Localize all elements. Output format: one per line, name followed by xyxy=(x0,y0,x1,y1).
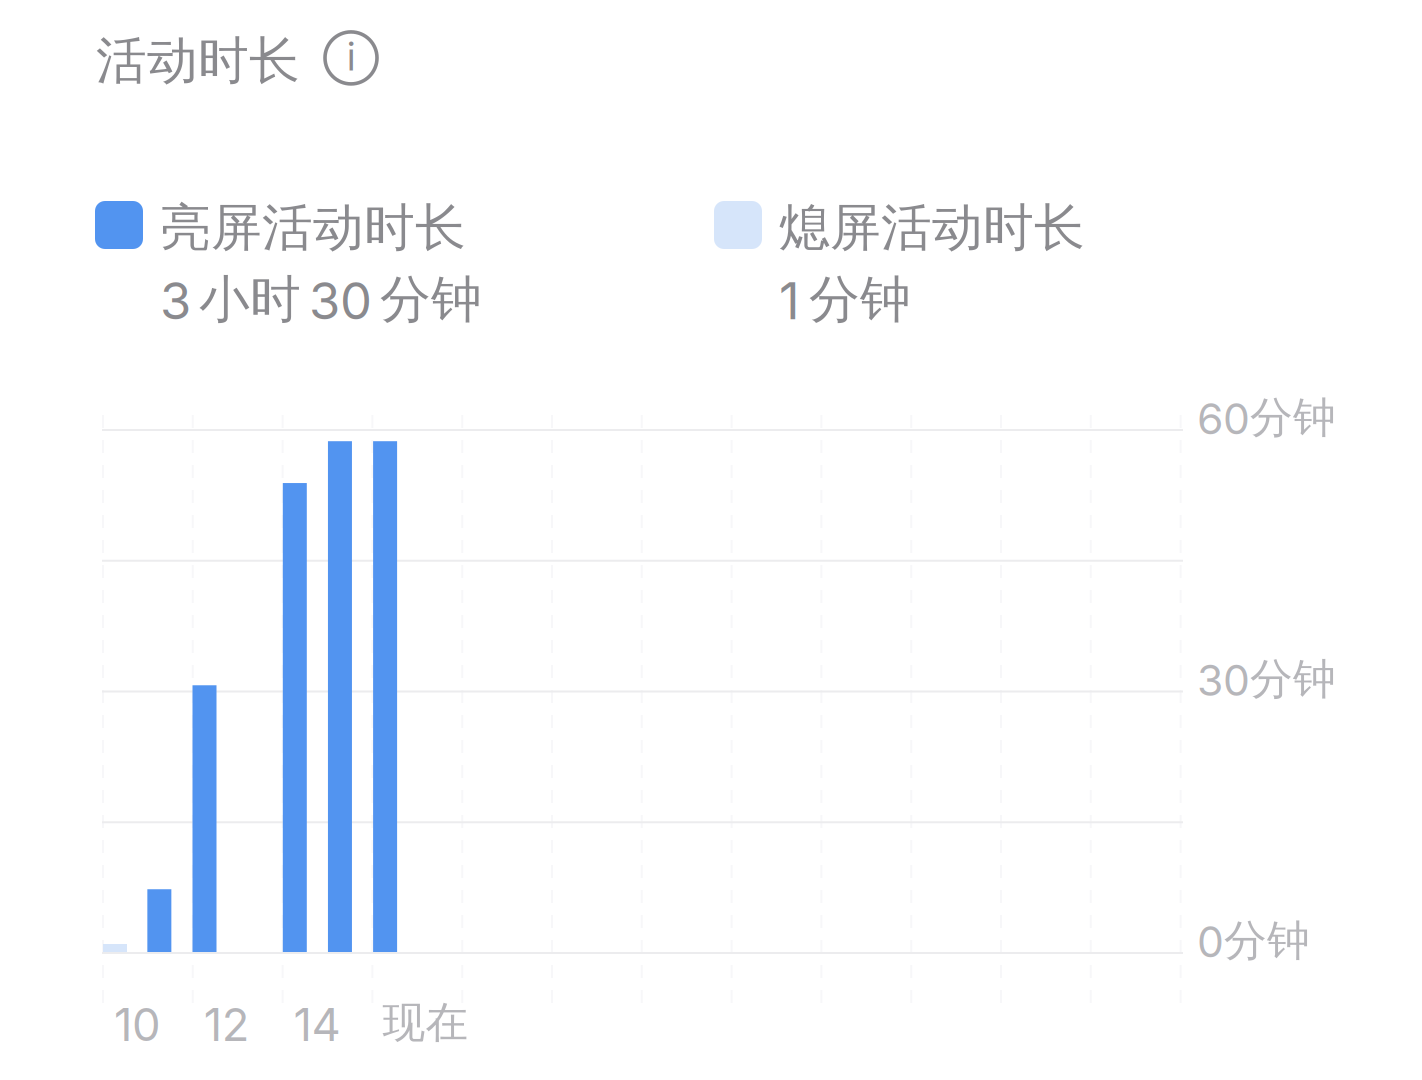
staticText: 30分钟 xyxy=(1197,652,1336,706)
staticText: 60分钟 xyxy=(1197,391,1336,445)
staticText: 0分钟 xyxy=(1197,914,1310,968)
staticText: 3 小时 30 分钟 xyxy=(160,268,482,332)
staticText: 12 xyxy=(204,997,250,1052)
staticText: i xyxy=(347,32,355,80)
staticText: 1 分钟 xyxy=(779,268,911,332)
staticText: 10 xyxy=(114,997,161,1052)
button[interactable]: 关于活动时长 xyxy=(323,33,379,89)
staticText: 14 xyxy=(294,997,341,1052)
staticText: 现在 xyxy=(382,996,468,1050)
staticText: 熄屏活动时长 xyxy=(779,196,1085,260)
staticText: 活动时长 xyxy=(96,29,300,93)
staticText: 亮屏活动时长 xyxy=(160,196,466,260)
